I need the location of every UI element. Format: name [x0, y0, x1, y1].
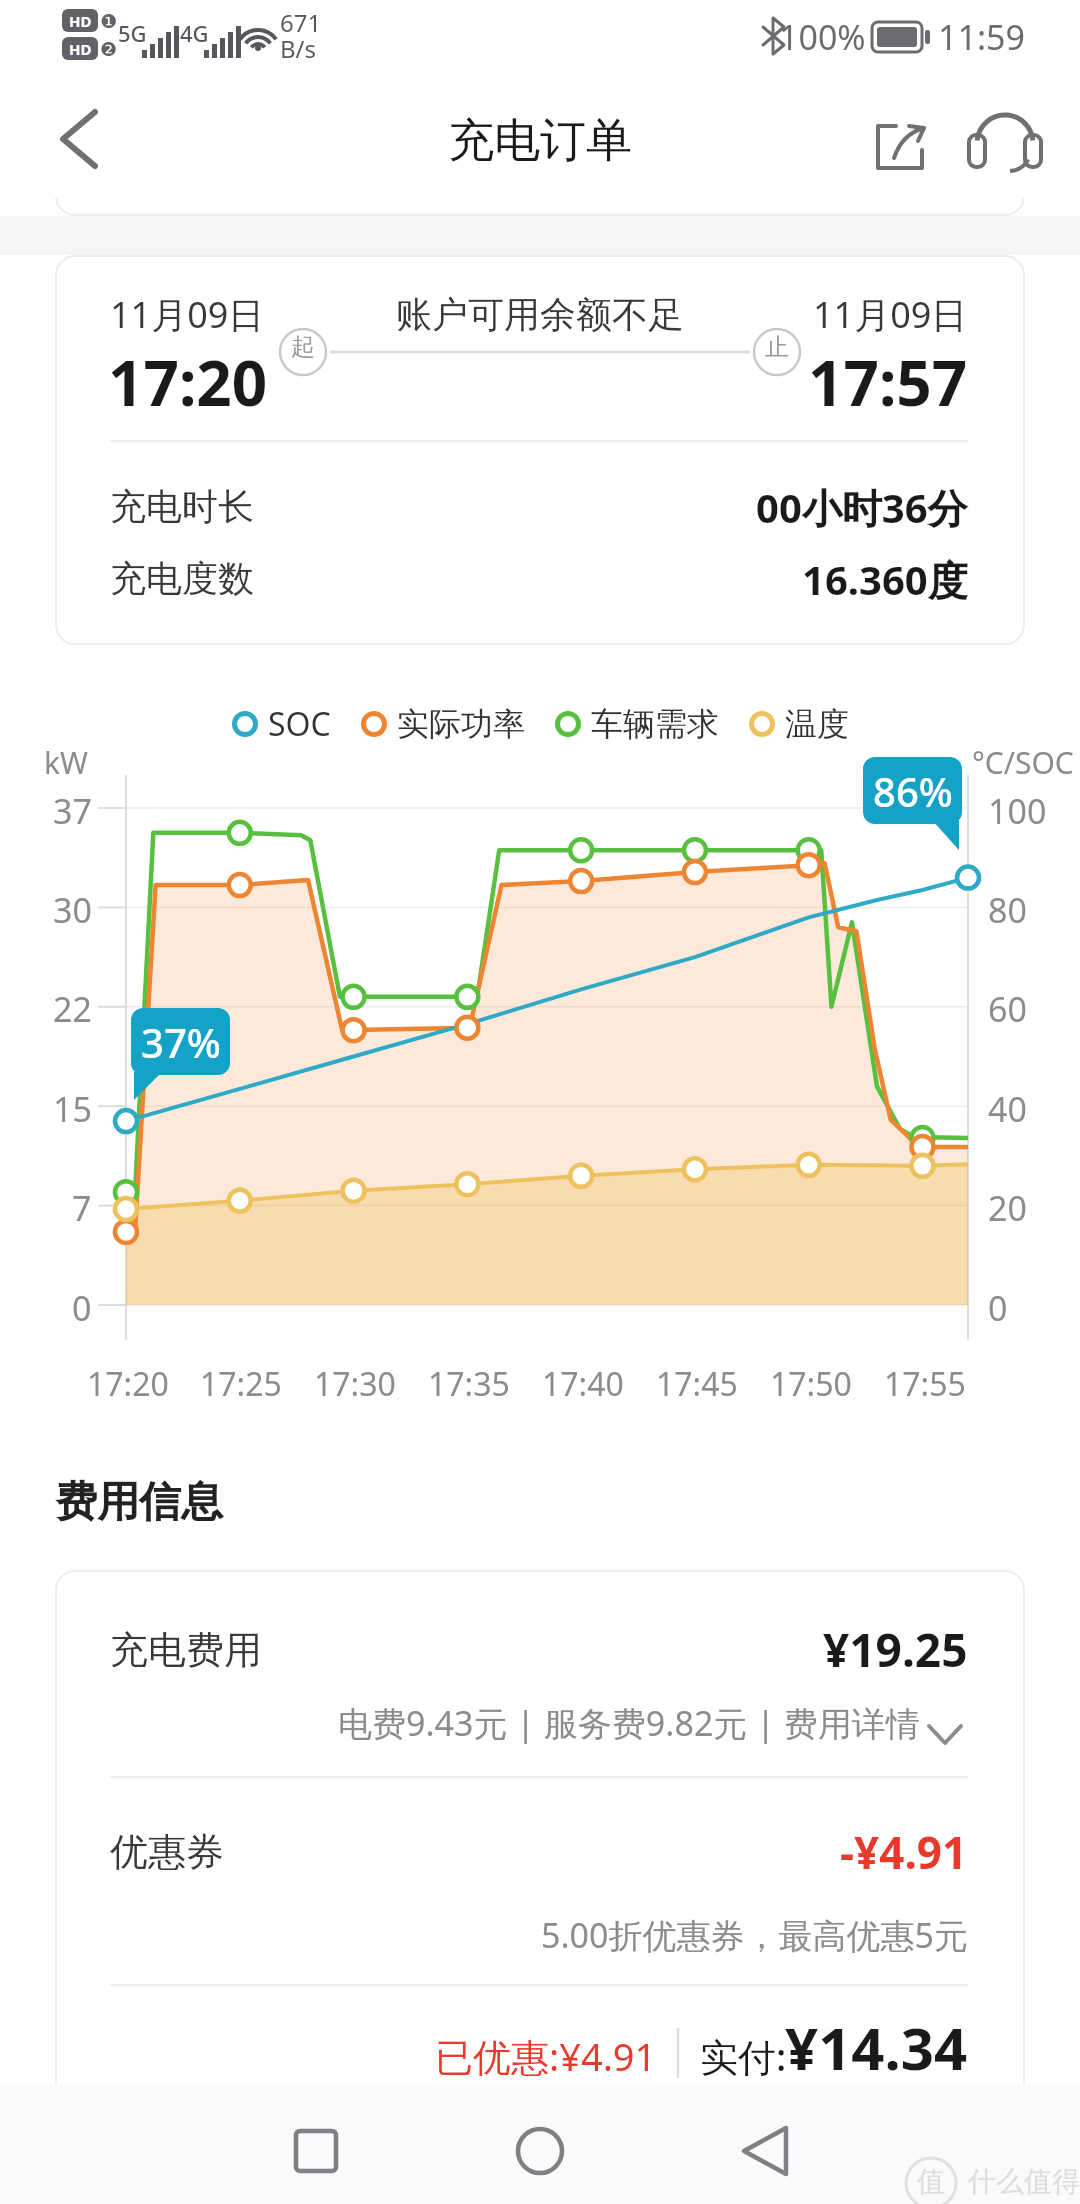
button[interactable]: [270, 2110, 360, 2195]
staticText: HD: [69, 39, 92, 59]
staticText: 40: [988, 1086, 1027, 1132]
staticText: 电费9.43元 | 服务费9.82元 | 费用详情: [338, 1700, 920, 1746]
staticText: -¥4.91: [840, 1822, 968, 1882]
staticText: 100: [988, 788, 1047, 834]
staticText: 什么值得买: [968, 2164, 1080, 2199]
staticText: 17:20: [87, 1362, 169, 1406]
staticText: 值: [917, 2164, 945, 2199]
staticText: 7: [72, 1185, 92, 1231]
staticText: B/s: [280, 32, 317, 65]
staticText: 0: [72, 1285, 92, 1331]
staticText: 17:50: [770, 1362, 852, 1406]
staticText: 温度: [785, 704, 849, 744]
staticText: 60: [988, 986, 1027, 1032]
button[interactable]: [960, 105, 1040, 175]
staticText: kW: [44, 742, 88, 783]
staticText: 15: [53, 1086, 92, 1132]
staticText: ❶: [100, 10, 118, 32]
staticText: 5.00折优惠券，最高优惠5元: [541, 1912, 968, 1958]
staticText: 17:25: [200, 1362, 282, 1406]
staticText: 充电时长: [110, 484, 254, 529]
staticText: 22: [53, 986, 92, 1032]
staticText: 11月09日: [813, 290, 968, 339]
staticText: 30: [53, 887, 92, 933]
staticText: 17:45: [656, 1362, 738, 1406]
button[interactable]: 电费9.43元 | 服务费9.82元 | 费用详情: [320, 1700, 968, 1760]
staticText: 起: [291, 332, 315, 362]
staticText: 已优惠:¥4.91: [435, 2030, 657, 2082]
staticText: °C/SOC: [972, 742, 1074, 783]
staticText: 实际功率: [397, 704, 525, 744]
staticText: 17:57: [808, 340, 968, 424]
staticText: 充电订单: [448, 112, 632, 170]
staticText: 11:59: [938, 14, 1025, 60]
staticText: 实付:: [700, 2030, 787, 2082]
staticText: 37: [53, 788, 92, 834]
staticText: 车辆需求: [591, 704, 719, 744]
staticText: HD: [69, 11, 92, 31]
staticText: ❷: [100, 38, 118, 60]
staticText: 00小时36分: [756, 480, 968, 535]
button[interactable]: [860, 105, 940, 175]
staticText: 账户可用余额不足: [396, 292, 684, 337]
staticText: 17:35: [428, 1362, 510, 1406]
staticText: 16.360度: [802, 552, 968, 607]
staticText: ¥19.25: [823, 1618, 968, 1681]
staticText: 充电度数: [110, 556, 254, 601]
staticText: 11月09日: [110, 290, 265, 339]
staticText: 17:30: [314, 1362, 396, 1406]
staticText: 充电费用: [110, 1626, 262, 1674]
staticText: 止: [765, 332, 789, 362]
staticText: 4G: [180, 18, 209, 48]
button[interactable]: [40, 100, 120, 180]
staticText: 37%: [141, 1015, 221, 1069]
button[interactable]: [720, 2110, 810, 2195]
staticText: 5G: [118, 18, 147, 48]
staticText: 20: [988, 1185, 1027, 1231]
staticText: 17:40: [542, 1362, 624, 1406]
staticText: 优惠券: [110, 1828, 224, 1876]
staticText: 671: [280, 6, 322, 39]
staticText: ¥14.34: [785, 2008, 968, 2087]
staticText: 费用信息: [55, 1476, 223, 1529]
staticText: 17:20: [108, 340, 268, 424]
staticText: 17:55: [884, 1362, 966, 1406]
staticText: SOC: [268, 702, 331, 746]
staticText: 80: [988, 887, 1027, 933]
button[interactable]: [495, 2110, 585, 2195]
staticText: 0: [988, 1285, 1008, 1331]
staticText: 86%: [873, 764, 953, 818]
staticText: 100%: [779, 14, 866, 60]
